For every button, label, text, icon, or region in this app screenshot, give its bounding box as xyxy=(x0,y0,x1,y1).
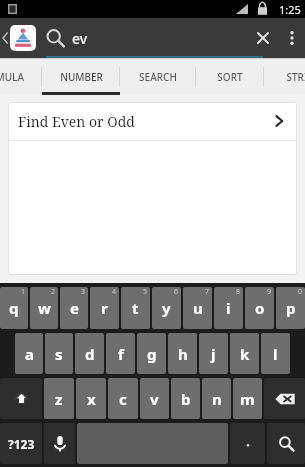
staticText: h xyxy=(178,344,188,364)
staticText: ev xyxy=(72,29,88,48)
staticText: Find Even or Odd xyxy=(18,112,271,131)
staticText: ?123 xyxy=(8,436,35,452)
staticText: g xyxy=(147,344,157,364)
button[interactable]: a xyxy=(15,333,43,374)
staticText: u xyxy=(193,298,203,318)
button[interactable]: NUMBER xyxy=(42,58,120,95)
button[interactable]: k xyxy=(230,333,259,374)
staticText: SEARCH xyxy=(139,70,177,84)
staticText: r xyxy=(101,298,108,318)
staticText: 4 xyxy=(112,287,117,297)
button[interactable]: Voice input xyxy=(44,423,75,464)
button[interactable]: SORT xyxy=(196,58,264,95)
staticText: 7 xyxy=(205,287,210,297)
button[interactable]: v xyxy=(140,378,169,419)
button[interactable]: x xyxy=(76,378,106,419)
button[interactable]: f xyxy=(106,333,135,374)
button[interactable]: u xyxy=(183,287,212,329)
staticText: 5 xyxy=(143,287,148,297)
button[interactable]: t xyxy=(121,287,150,329)
staticText: y xyxy=(162,298,171,318)
button[interactable]: i xyxy=(214,287,243,329)
button[interactable]: h xyxy=(168,333,197,374)
button[interactable]: y xyxy=(152,287,181,329)
staticText: c xyxy=(119,389,127,409)
button[interactable]: d xyxy=(75,333,104,374)
button[interactable]: s xyxy=(45,333,73,374)
button[interactable]: More options xyxy=(279,18,305,58)
button[interactable]: Shift xyxy=(0,378,42,419)
staticText: t xyxy=(132,298,139,318)
button[interactable]: Clear search xyxy=(247,22,279,54)
staticText: 1 xyxy=(21,287,26,297)
button[interactable]: ev xyxy=(44,18,279,58)
staticText: SORT xyxy=(217,70,243,84)
staticText: z xyxy=(55,389,63,409)
button[interactable]: ?123 xyxy=(0,423,42,464)
button[interactable]: z xyxy=(44,378,74,419)
button[interactable]: q xyxy=(0,287,28,329)
staticText: v xyxy=(150,389,159,409)
button[interactable]: FORMULA xyxy=(0,58,42,95)
staticText: p xyxy=(286,298,296,318)
button[interactable]: m xyxy=(233,378,262,419)
staticText: n xyxy=(212,389,222,409)
staticText: q xyxy=(9,298,19,318)
staticText: 8 xyxy=(236,287,241,297)
button[interactable]: STRING xyxy=(264,58,305,95)
button[interactable]: g xyxy=(137,333,166,374)
button[interactable] xyxy=(230,423,265,464)
button[interactable]: p xyxy=(276,287,305,329)
staticText: s xyxy=(55,344,63,364)
staticText: x xyxy=(87,389,96,409)
button[interactable]: Search xyxy=(267,423,305,464)
staticText: f xyxy=(118,344,124,364)
staticText: e xyxy=(70,298,79,318)
staticText: FORMULA xyxy=(0,70,24,84)
staticText: 2 xyxy=(51,287,56,297)
button[interactable]: Up xyxy=(0,18,44,58)
button[interactable]: e xyxy=(60,287,88,329)
staticText: o xyxy=(255,298,265,318)
staticText: d xyxy=(85,344,95,364)
staticText: STRING xyxy=(286,70,305,84)
button[interactable]: r xyxy=(90,287,119,329)
staticText: 3 xyxy=(81,287,86,297)
staticText: w xyxy=(38,298,51,318)
staticText: j xyxy=(211,344,216,364)
button[interactable]: o xyxy=(245,287,274,329)
staticText: m xyxy=(240,389,255,409)
button[interactable]: Find Even or Odd xyxy=(8,102,297,140)
staticText: b xyxy=(181,389,191,409)
button[interactable]: j xyxy=(199,333,228,374)
button[interactable]: SEARCH xyxy=(120,58,196,95)
staticText: 1:25 xyxy=(279,2,301,17)
button[interactable]: n xyxy=(202,378,231,419)
button[interactable]: w xyxy=(30,287,58,329)
staticText: i xyxy=(226,298,231,318)
button[interactable]: b xyxy=(171,378,200,419)
button[interactable]: c xyxy=(108,378,138,419)
button[interactable]: l xyxy=(261,333,290,374)
staticText: NUMBER xyxy=(60,70,103,84)
staticText: 0 xyxy=(298,287,303,297)
staticText: k xyxy=(240,344,250,364)
staticText: l xyxy=(273,344,278,364)
staticText: a xyxy=(25,344,34,364)
button[interactable]: Delete xyxy=(264,378,305,419)
staticText: 6 xyxy=(174,287,179,297)
staticText: 9 xyxy=(267,287,272,297)
